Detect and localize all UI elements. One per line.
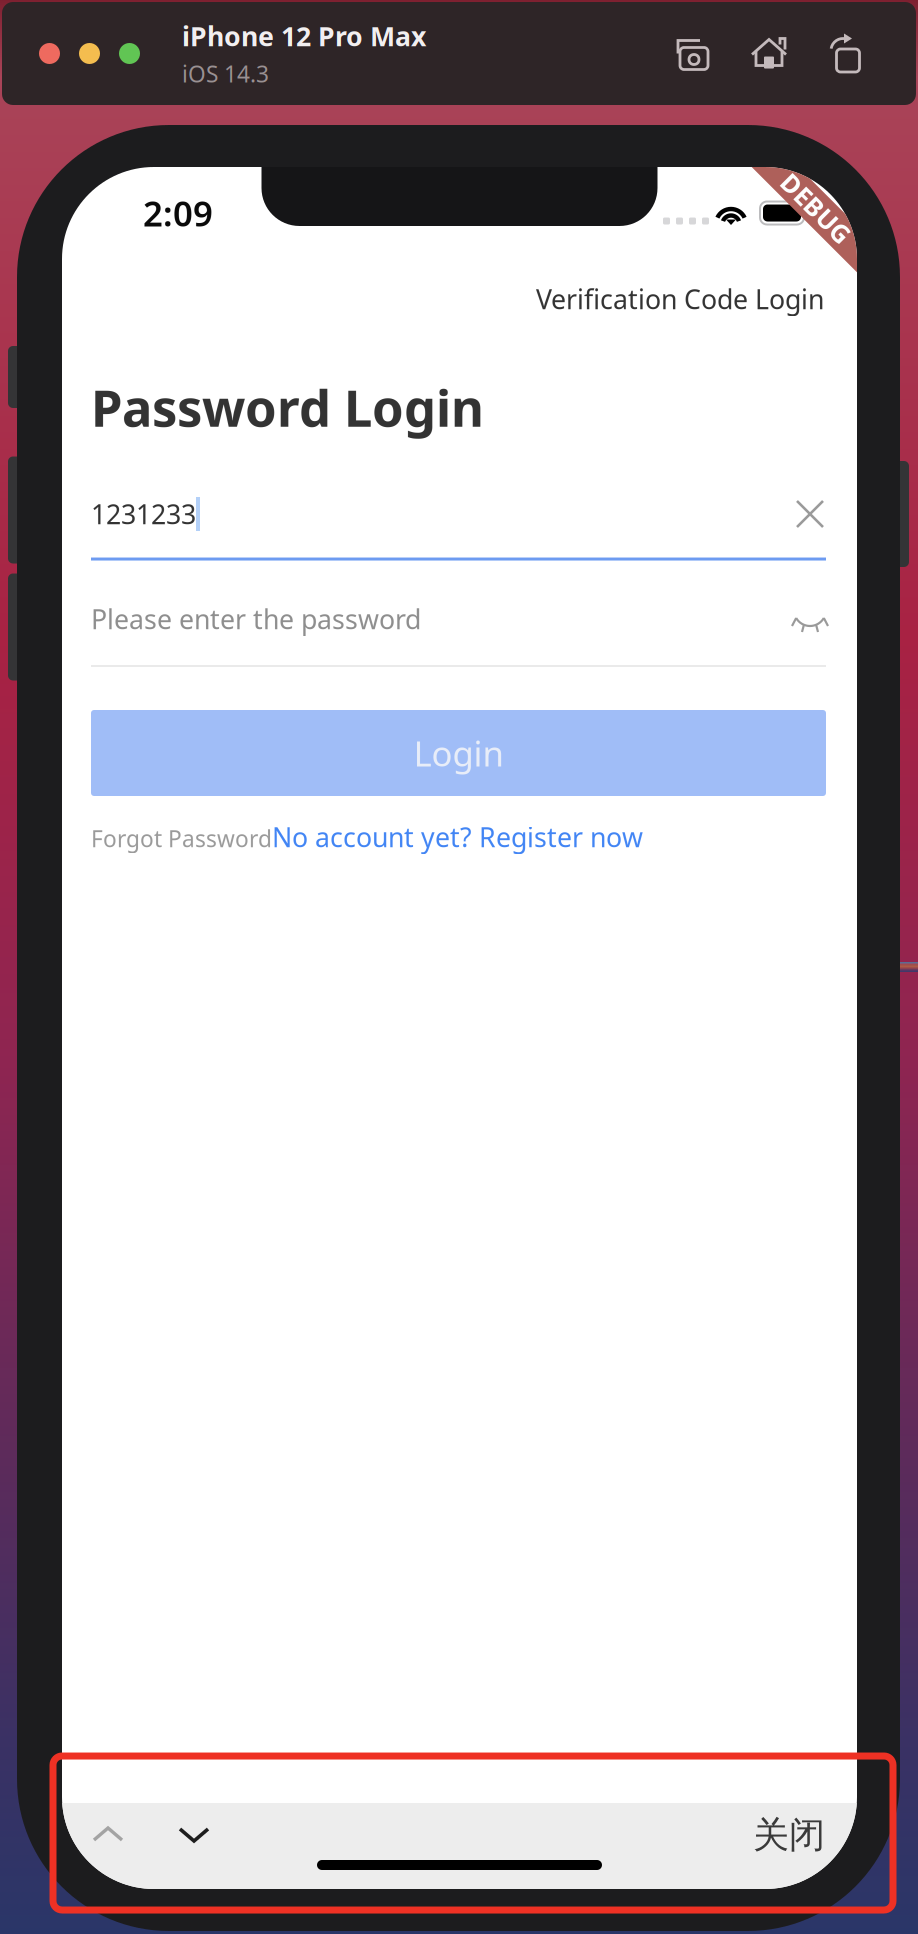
- staticText: Verification Code Login: [536, 281, 824, 317]
- staticText: No account yet? Register now: [272, 819, 643, 855]
- staticText: iOS 14.3: [182, 59, 269, 89]
- button[interactable]: Take screenshot: [668, 32, 714, 74]
- staticText: Please enter the password: [91, 601, 421, 637]
- staticText: Login: [413, 730, 503, 776]
- staticText: iPhone 12 Pro Max: [182, 18, 426, 54]
- button[interactable]: Verification Code Login: [494, 276, 824, 322]
- button[interactable]: Home: [748, 32, 790, 74]
- staticText: 关闭: [753, 1813, 825, 1857]
- button[interactable]: Previous field: [85, 1812, 131, 1858]
- button[interactable]: Next field: [171, 1812, 217, 1858]
- button[interactable]: No account yet? Register now: [272, 819, 643, 855]
- staticText: Password Login: [91, 373, 484, 441]
- button[interactable]: 关闭: [735, 1815, 825, 1855]
- button[interactable]: Show password: [786, 596, 834, 644]
- staticText: 1231233: [91, 496, 196, 532]
- staticText: Forgot Password: [91, 823, 272, 854]
- button[interactable]: Login: [91, 710, 826, 796]
- button[interactable]: Clear phone number: [786, 490, 834, 538]
- button[interactable]: Rotate: [824, 32, 866, 74]
- button[interactable]: Forgot Password: [91, 823, 272, 854]
- staticText: DEBUG: [772, 191, 859, 225]
- staticText: 2:09: [143, 190, 213, 236]
